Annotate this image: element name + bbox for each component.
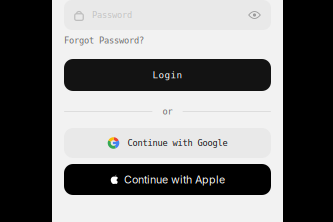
button[interactable]: Forgot Password? xyxy=(64,34,144,47)
button[interactable]: Login xyxy=(64,59,271,91)
button[interactable]: Continue with Apple xyxy=(64,164,271,195)
button[interactable]: Show password xyxy=(248,10,261,20)
staticText: Login xyxy=(152,70,182,80)
staticText: Forgot Password? xyxy=(64,35,144,46)
staticText: or xyxy=(162,106,172,117)
staticText: Password xyxy=(92,10,132,20)
staticText: Continue with Apple xyxy=(124,173,225,186)
staticText: Continue with Google xyxy=(127,138,227,148)
button[interactable]: Continue with Google xyxy=(64,128,271,158)
